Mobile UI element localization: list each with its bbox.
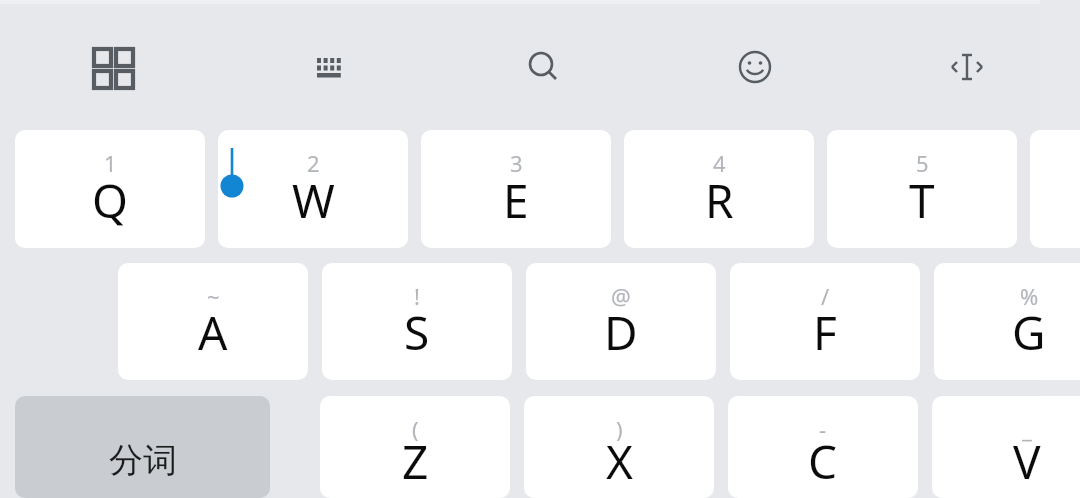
staticText: 4 — [713, 148, 726, 178]
button[interactable]: % — [934, 263, 1080, 380]
button[interactable]: Emoji — [734, 46, 778, 90]
staticText: G — [1012, 301, 1046, 364]
staticText: @ — [611, 281, 631, 311]
button[interactable]: _ — [932, 396, 1080, 498]
staticText: 1 — [104, 148, 117, 178]
staticText: ! — [414, 281, 420, 311]
button[interactable]: 4 — [624, 130, 814, 248]
staticText: % — [1020, 281, 1039, 311]
staticText: Z — [402, 430, 429, 493]
staticText: X — [606, 430, 633, 493]
staticText: A — [198, 301, 228, 364]
staticText: S — [404, 301, 430, 364]
staticText: 2 — [307, 148, 320, 178]
button[interactable]: @ — [526, 263, 716, 380]
button[interactable]: Keyboard layouts — [92, 46, 136, 90]
staticText: 分词 — [109, 439, 177, 482]
staticText: R — [705, 169, 734, 232]
staticText: D — [604, 301, 638, 364]
button[interactable]: / — [730, 263, 920, 380]
other: Text cursor handle — [218, 140, 258, 210]
staticText: / — [821, 281, 830, 311]
staticText: F — [813, 301, 837, 364]
button[interactable]: 2 — [218, 130, 408, 248]
button[interactable]: ) — [524, 396, 714, 498]
button[interactable]: 1 — [15, 130, 205, 248]
staticText: T — [909, 169, 935, 232]
staticText: C — [808, 430, 838, 493]
button[interactable]: Search — [523, 46, 567, 90]
button[interactable]: ! — [322, 263, 512, 380]
staticText: ( — [412, 414, 419, 444]
staticText: 5 — [916, 148, 929, 178]
staticText: E — [503, 169, 529, 232]
button[interactable]: - — [728, 396, 918, 498]
staticText: - — [819, 414, 827, 444]
staticText: _ — [1022, 414, 1032, 444]
button[interactable]: 3 — [421, 130, 611, 248]
button[interactable]: 分词 — [15, 396, 270, 498]
button[interactable]: ~ — [118, 263, 308, 380]
staticText: W — [292, 169, 335, 232]
staticText: V — [1013, 430, 1041, 493]
staticText: Q — [92, 169, 128, 232]
button[interactable]: 5 — [827, 130, 1017, 248]
staticText: ~ — [207, 281, 220, 311]
staticText: ) — [616, 414, 623, 444]
button[interactable]: Keyboard — [311, 46, 355, 90]
button[interactable]: Move cursor — [946, 46, 990, 90]
staticText: 3 — [510, 148, 523, 178]
button[interactable]: ( — [320, 396, 510, 498]
